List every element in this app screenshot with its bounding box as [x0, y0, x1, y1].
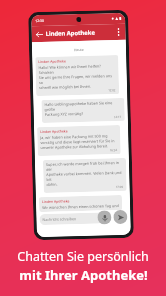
- button[interactable]: Send: [113, 210, 128, 224]
- staticText: Packung XYZ vorrätig?: [45, 111, 84, 117]
- staticText: Linden Apotheke: [38, 58, 66, 64]
- staticText: Hallo Lieblingsapotheke haben Sie eine g…: [44, 100, 122, 112]
- staticText: unserer Apotheke zur Abholung bereit.: [40, 143, 109, 150]
- button[interactable]: Record voice message: [97, 210, 112, 225]
- staticText: Super, ich werde morgen früh bei Ihnen i…: [46, 160, 123, 172]
- staticText: Sie uns gerne Ihre Fragen, wir melden un…: [39, 73, 116, 85]
- staticText: Linden Apotheke: [45, 29, 96, 38]
- button[interactable]: Super, ich werde morgen früh bei Ihnen i…: [43, 158, 127, 193]
- button[interactable]: More options: [111, 25, 126, 39]
- staticText: Linden Apotheke: [40, 128, 68, 134]
- staticText: 12:30: [35, 18, 44, 23]
- staticText: 12:02: [108, 88, 116, 92]
- staticText: Wir wünschen Ihnen einen schönen Tag und: [42, 203, 119, 210]
- staticText: Nachricht schreiben: [42, 216, 76, 222]
- staticText: Chatten Sie persönlich: [17, 248, 149, 265]
- button[interactable]: Back: [31, 27, 46, 41]
- staticText: mit Ihrer Apotheke!: [19, 266, 148, 284]
- button[interactable]: Linden Apotheke: [37, 125, 121, 156]
- staticText: Apotheke vorbei kommen. Vielen Dank und …: [46, 170, 123, 182]
- staticText: Ja, wir haben eine Packung mit 500 mg: [40, 133, 108, 140]
- staticText: 16:34: [110, 148, 118, 152]
- staticText: vorrätig und diese liegt reserviert für …: [40, 138, 114, 145]
- staticText: Hallo! Wie können wir Ihnen helfen? Schi…: [38, 63, 116, 75]
- staticText: Heute: [74, 47, 84, 52]
- button[interactable]: Hallo Lieblingsapotheke haben Sie eine g…: [41, 98, 125, 123]
- staticText: 17:09: [116, 185, 124, 189]
- staticText: Linden Apotheke: [42, 198, 70, 204]
- staticText: dahin.: [46, 182, 58, 187]
- button[interactable]: Nachricht schreiben: [39, 212, 104, 225]
- button[interactable]: Linden Apotheke: [39, 195, 122, 212]
- staticText: schnell wie möglich bei Ihnen.: [39, 84, 92, 90]
- staticText: 14:17: [114, 115, 122, 119]
- button[interactable]: Linden Apotheke: [35, 55, 119, 96]
